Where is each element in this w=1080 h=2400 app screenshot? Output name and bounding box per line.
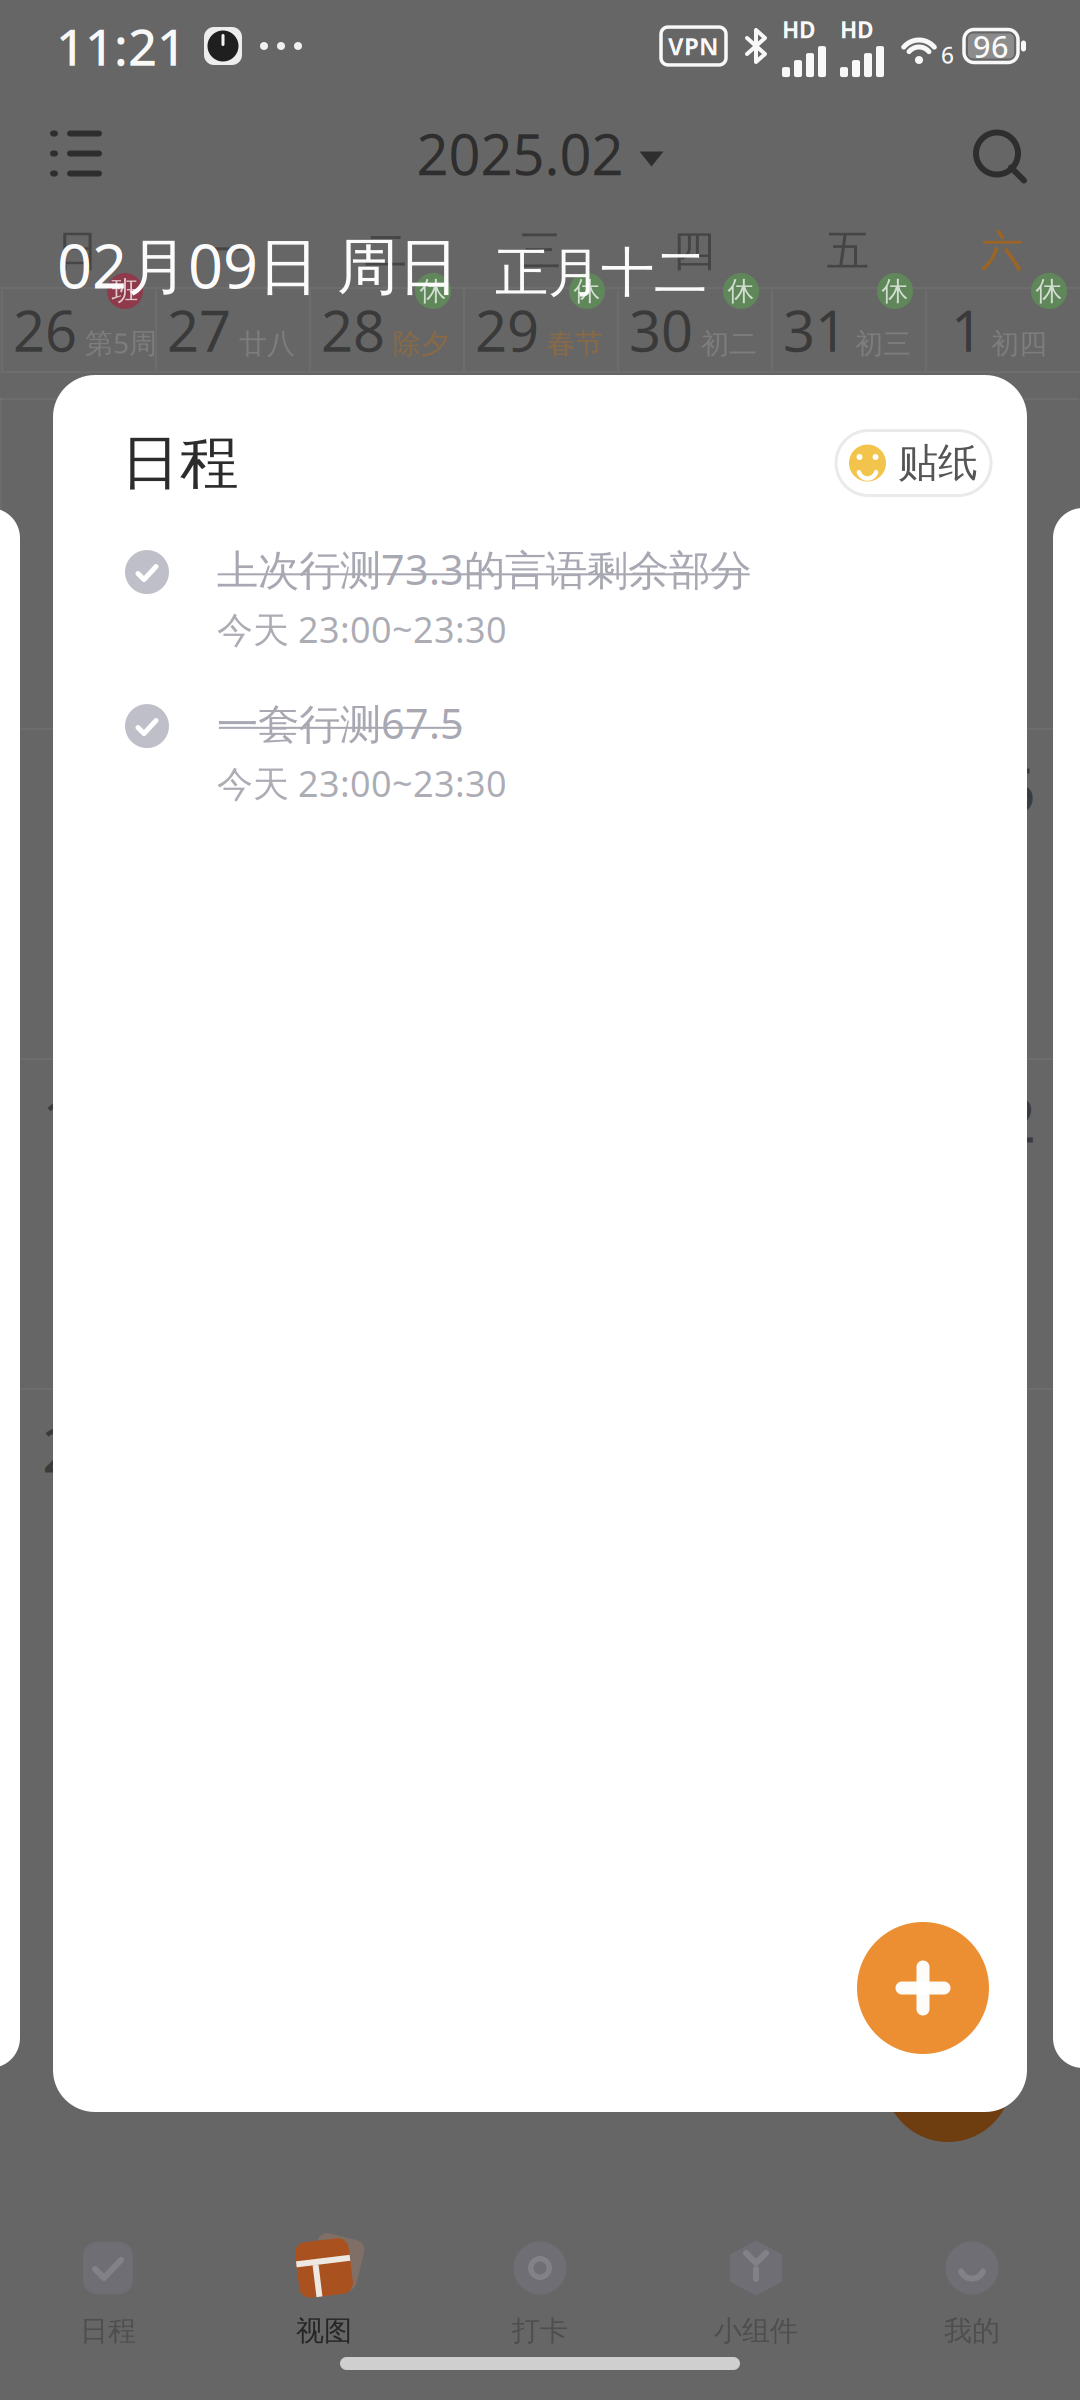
staticText: 视图 — [296, 2314, 352, 2348]
button[interactable]: 上次行测73.3的言语剩余部分 — [53, 540, 1027, 660]
button[interactable]: 贴纸 — [836, 430, 991, 495]
staticText: 22 — [966, 1078, 1036, 1159]
staticText: 27 — [167, 293, 231, 367]
staticText: 12 — [504, 748, 574, 829]
staticText: 第5周 — [85, 324, 157, 361]
staticText: VPN — [668, 30, 719, 62]
staticText: 四 — [672, 225, 715, 277]
staticText: 今天 23:00~23:30 — [217, 605, 507, 653]
button[interactable]: 小组件 — [648, 2237, 864, 2356]
staticText: 16 — [42, 1078, 112, 1159]
staticText: 11 — [350, 748, 420, 829]
staticText: 二 — [364, 225, 407, 277]
staticText: 休 — [573, 275, 600, 307]
staticText: 春节 — [547, 327, 603, 361]
button[interactable]: 日程 — [0, 2237, 216, 2356]
staticText: 休 — [419, 275, 446, 307]
staticText: 五 — [826, 225, 869, 277]
button[interactable]: 打卡 — [432, 2237, 648, 2356]
staticText: 1 — [951, 293, 983, 367]
button[interactable]: 一套行测67.5 — [53, 694, 1027, 814]
staticText: 今天 23:00~23:30 — [217, 759, 507, 807]
staticText: 小组件 — [714, 2314, 798, 2348]
staticText: 一套行测67.5 — [217, 696, 464, 750]
staticText: 日程 — [121, 427, 239, 499]
staticText: 初四 — [991, 327, 1047, 361]
staticText: 班 — [111, 275, 138, 307]
staticText: HD — [840, 14, 874, 44]
staticText: 除夕 — [393, 327, 449, 361]
staticText: 96 — [973, 26, 1009, 66]
staticText: 休 — [881, 275, 908, 307]
staticText: 打卡 — [512, 2314, 568, 2348]
staticText: 6 — [941, 40, 954, 70]
button[interactable]: 视图 — [216, 2237, 432, 2356]
staticText: 30 — [629, 293, 693, 367]
staticText: 02月09日 周日 — [57, 224, 459, 305]
staticText: 10 — [196, 748, 266, 829]
staticText: 廿八 — [239, 327, 295, 361]
staticText: 三 — [518, 225, 561, 277]
staticText: 初三 — [855, 327, 911, 361]
button[interactable]: Menu — [32, 114, 120, 192]
staticText: 7 — [829, 418, 864, 499]
button[interactable]: Add — [857, 1922, 989, 2054]
button[interactable]: 2025.02 — [396, 102, 681, 205]
staticText: 初二 — [701, 327, 757, 361]
staticText: 11:21 — [56, 12, 186, 80]
staticText: 15 — [966, 748, 1036, 829]
staticText: 日 — [56, 225, 99, 277]
staticText: 2025.02 — [416, 116, 623, 191]
button[interactable]: 我的 — [864, 2237, 1080, 2356]
staticText: 日程 — [80, 2314, 136, 2348]
staticText: 31 — [783, 293, 847, 367]
staticText: HD — [782, 14, 816, 44]
staticText: 上次行测73.3的言语剩余部分 — [217, 542, 751, 596]
staticText: 3 — [213, 418, 248, 499]
staticText: 我的 — [944, 2314, 1000, 2348]
staticText: 休 — [1035, 275, 1062, 307]
staticText: 23 — [42, 1408, 112, 1489]
staticText: 28 — [321, 293, 385, 367]
staticText: 一 — [210, 225, 253, 277]
staticText: 8 — [983, 418, 1018, 499]
staticText: 贴纸 — [898, 438, 978, 488]
staticText: 29 — [475, 293, 539, 367]
button[interactable]: Search — [958, 114, 1036, 192]
staticText: 26 — [13, 293, 77, 367]
staticText: 六 — [980, 225, 1023, 277]
staticText: 休 — [727, 275, 754, 307]
staticText: 正月十二 — [495, 240, 707, 305]
